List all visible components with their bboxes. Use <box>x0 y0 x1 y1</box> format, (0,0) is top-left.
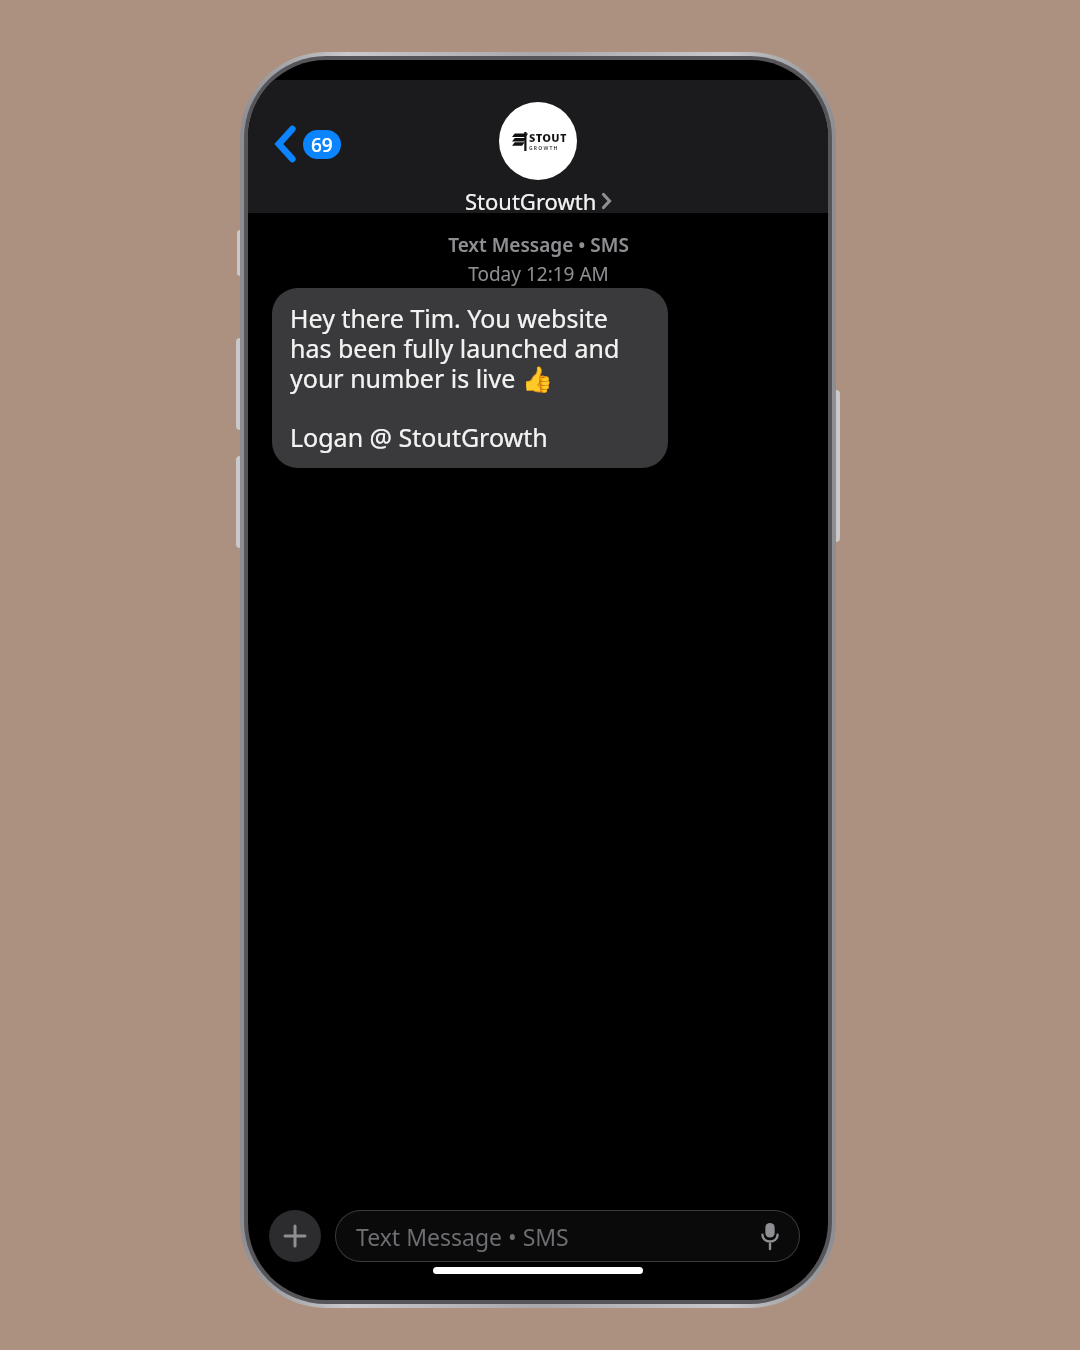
staticText: StoutGrowth <box>465 186 597 216</box>
button[interactable]: STOUT <box>248 102 828 216</box>
button[interactable]: Add attachment <box>269 1210 321 1262</box>
button[interactable]: Hey there Tim. You website has been full… <box>272 288 668 468</box>
staticText: Hey there Tim. You website has been full… <box>290 301 652 395</box>
staticText: 69 <box>311 132 333 158</box>
staticText: Logan @ StoutGrowth <box>290 420 548 454</box>
staticText: STOUT <box>529 130 567 145</box>
staticText: Text Message • SMS <box>356 1221 569 1252</box>
button[interactable]: Text Message • SMS <box>335 1210 800 1262</box>
staticText: GROWTH <box>529 145 559 152</box>
button[interactable]: Back to 69 conversations <box>272 120 345 168</box>
button[interactable]: Dictate <box>752 1218 788 1254</box>
staticText: Today 12:19 AM <box>468 261 609 287</box>
staticText: Text Message • SMS <box>448 232 629 258</box>
